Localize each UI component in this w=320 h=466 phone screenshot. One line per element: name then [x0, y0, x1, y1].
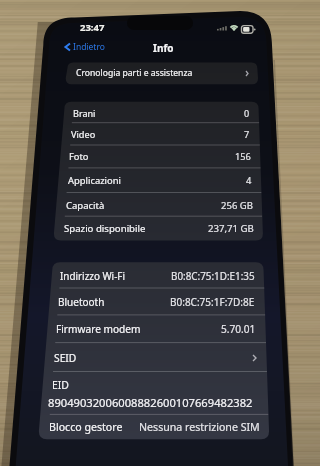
button[interactable]: Blocco gestore — [40, 414, 269, 439]
button[interactable]: Spazio disponibile — [55, 216, 263, 240]
staticText: B0:8C:75:1F:7D:8E — [170, 295, 255, 309]
staticText: EID — [52, 378, 69, 392]
staticText: Blocco gestore — [49, 420, 123, 434]
staticText: Spazio disponibile — [64, 222, 146, 235]
other: Apri SEID — [252, 354, 257, 362]
staticText: 89049032006008882600107669482382 — [48, 395, 253, 410]
staticText: 4 — [246, 174, 252, 187]
staticText: Applicazioni — [68, 174, 121, 187]
staticText: 7 — [244, 128, 250, 140]
staticText: 256 GB — [221, 199, 253, 212]
button[interactable]: Foto — [60, 145, 260, 168]
staticText: Brani — [73, 107, 96, 119]
staticText: Indietro — [73, 41, 105, 53]
staticText: SEID — [54, 351, 77, 365]
button[interactable]: Applicazioni — [59, 168, 261, 193]
button[interactable]: Indietro — [64, 41, 105, 53]
staticText: Foto — [69, 150, 89, 163]
staticText: Video — [71, 128, 96, 140]
staticText: Indirizzo Wi-Fi — [60, 269, 126, 282]
button[interactable]: Cronologia parti e assistenza — [67, 62, 258, 84]
button[interactable]: Firmware modem — [47, 315, 265, 343]
staticText: 237,71 GB — [208, 222, 254, 235]
staticText: 23:47 — [80, 21, 105, 34]
staticText: Firmware modem — [56, 322, 141, 336]
button[interactable]: Brani — [64, 102, 259, 123]
button[interactable]: SEID — [45, 343, 266, 372]
staticText: Bluetooth — [58, 295, 105, 309]
button[interactable]: Capacità — [57, 193, 262, 217]
button[interactable]: EID — [42, 372, 267, 415]
button[interactable]: Indirizzo Wi-Fi — [51, 262, 264, 288]
staticText: 156 — [235, 150, 251, 163]
button[interactable]: Bluetooth — [49, 288, 264, 315]
staticText: Info — [153, 41, 174, 55]
staticText: 5.70.01 — [221, 322, 256, 336]
staticText: Capacità — [66, 199, 105, 212]
staticText: 0 — [244, 107, 250, 119]
button[interactable]: Video — [62, 123, 259, 145]
staticText: B0:8C:75:1D:E1:35 — [171, 269, 255, 282]
staticText: Cronologia parti e assistenza — [76, 67, 193, 79]
staticText: Nessuna restrizione SIM — [139, 420, 260, 434]
